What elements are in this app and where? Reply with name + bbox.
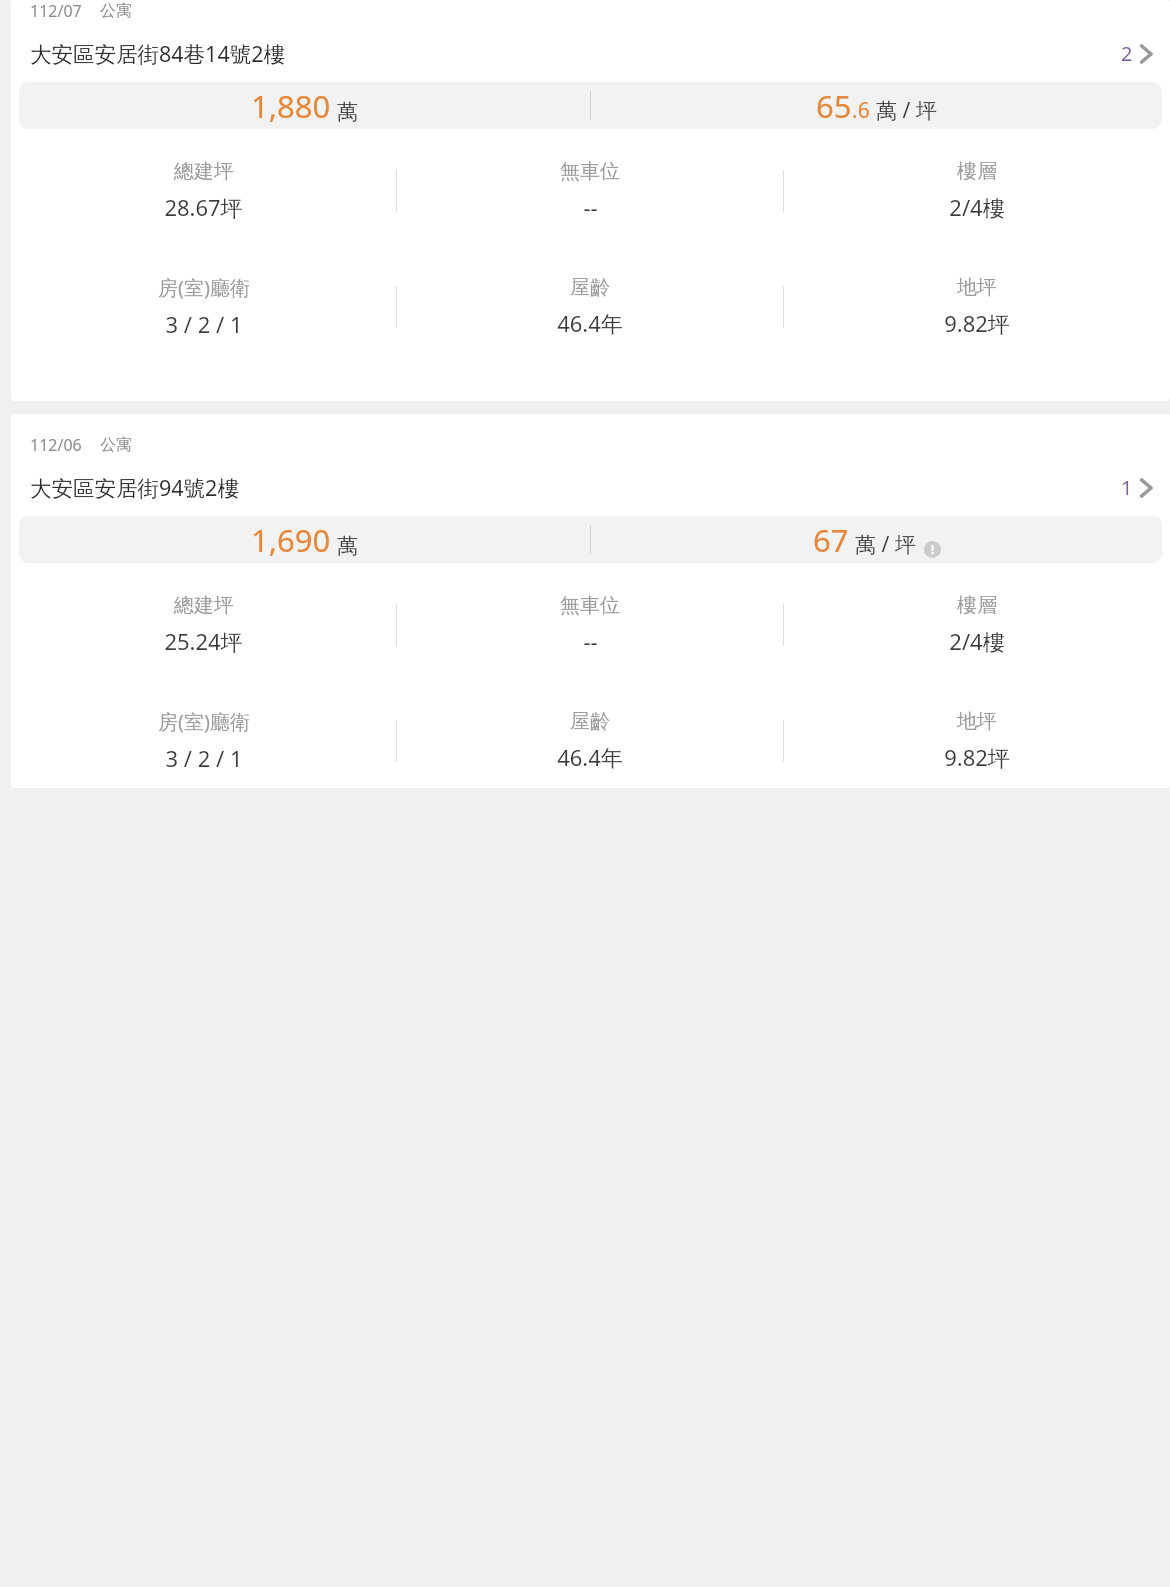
staticText: 2/4樓 xyxy=(949,192,1005,222)
staticText: 9.82坪 xyxy=(944,308,1010,338)
staticText: 46.4年 xyxy=(557,742,623,772)
staticText: 房(室)廳衛 xyxy=(158,274,250,301)
staticText: 2 xyxy=(1121,40,1133,67)
button[interactable]: 112/07 xyxy=(11,0,1170,401)
staticText: -- xyxy=(583,626,598,656)
staticText: .6 xyxy=(852,96,870,125)
staticText: 1,880 xyxy=(251,85,331,127)
staticText: 65 xyxy=(816,85,852,127)
staticText: 3 / 2 / 1 xyxy=(165,309,243,339)
staticText: 萬 / 坪 xyxy=(876,96,937,125)
staticText: 房(室)廳衛 xyxy=(158,708,250,735)
staticText: 屋齡 xyxy=(570,275,610,300)
staticText: 25.24坪 xyxy=(164,626,243,656)
staticText: 樓層 xyxy=(957,159,997,184)
staticText: 112/07 xyxy=(30,0,82,22)
staticText: 3 / 2 / 1 xyxy=(165,743,243,773)
staticText: 1,690 xyxy=(251,519,331,561)
button[interactable]: 價格說明 xyxy=(924,541,941,558)
staticText: 公寓 xyxy=(100,1,132,21)
staticText: 112/06 xyxy=(30,434,82,456)
staticText: 大安區安居街94號2樓 xyxy=(30,473,1121,502)
staticText: 總建坪 xyxy=(174,159,234,184)
button[interactable]: 1,690 xyxy=(19,516,1162,563)
staticText: 無車位 xyxy=(560,593,620,618)
staticText: 樓層 xyxy=(957,593,997,618)
staticText: 地坪 xyxy=(957,709,997,734)
staticText: 萬 / 坪 xyxy=(855,530,916,559)
staticText: 46.4年 xyxy=(557,308,623,338)
staticText: 地坪 xyxy=(957,275,997,300)
staticText: 無車位 xyxy=(560,159,620,184)
staticText: -- xyxy=(583,192,598,222)
staticText: 28.67坪 xyxy=(164,192,243,222)
staticText: 2/4樓 xyxy=(949,626,1005,656)
staticText: 1 xyxy=(1121,474,1133,501)
staticText: 屋齡 xyxy=(570,709,610,734)
button[interactable]: 1,880 xyxy=(19,82,1162,129)
staticText: 9.82坪 xyxy=(944,742,1010,772)
staticText: 67 xyxy=(813,519,849,561)
staticText: 總建坪 xyxy=(174,593,234,618)
staticText: 公寓 xyxy=(100,435,132,455)
button[interactable]: 112/06 xyxy=(11,414,1170,788)
staticText: 大安區安居街84巷14號2樓 xyxy=(30,39,1121,68)
staticText: 萬 xyxy=(337,99,358,125)
staticText: 萬 xyxy=(337,533,358,559)
